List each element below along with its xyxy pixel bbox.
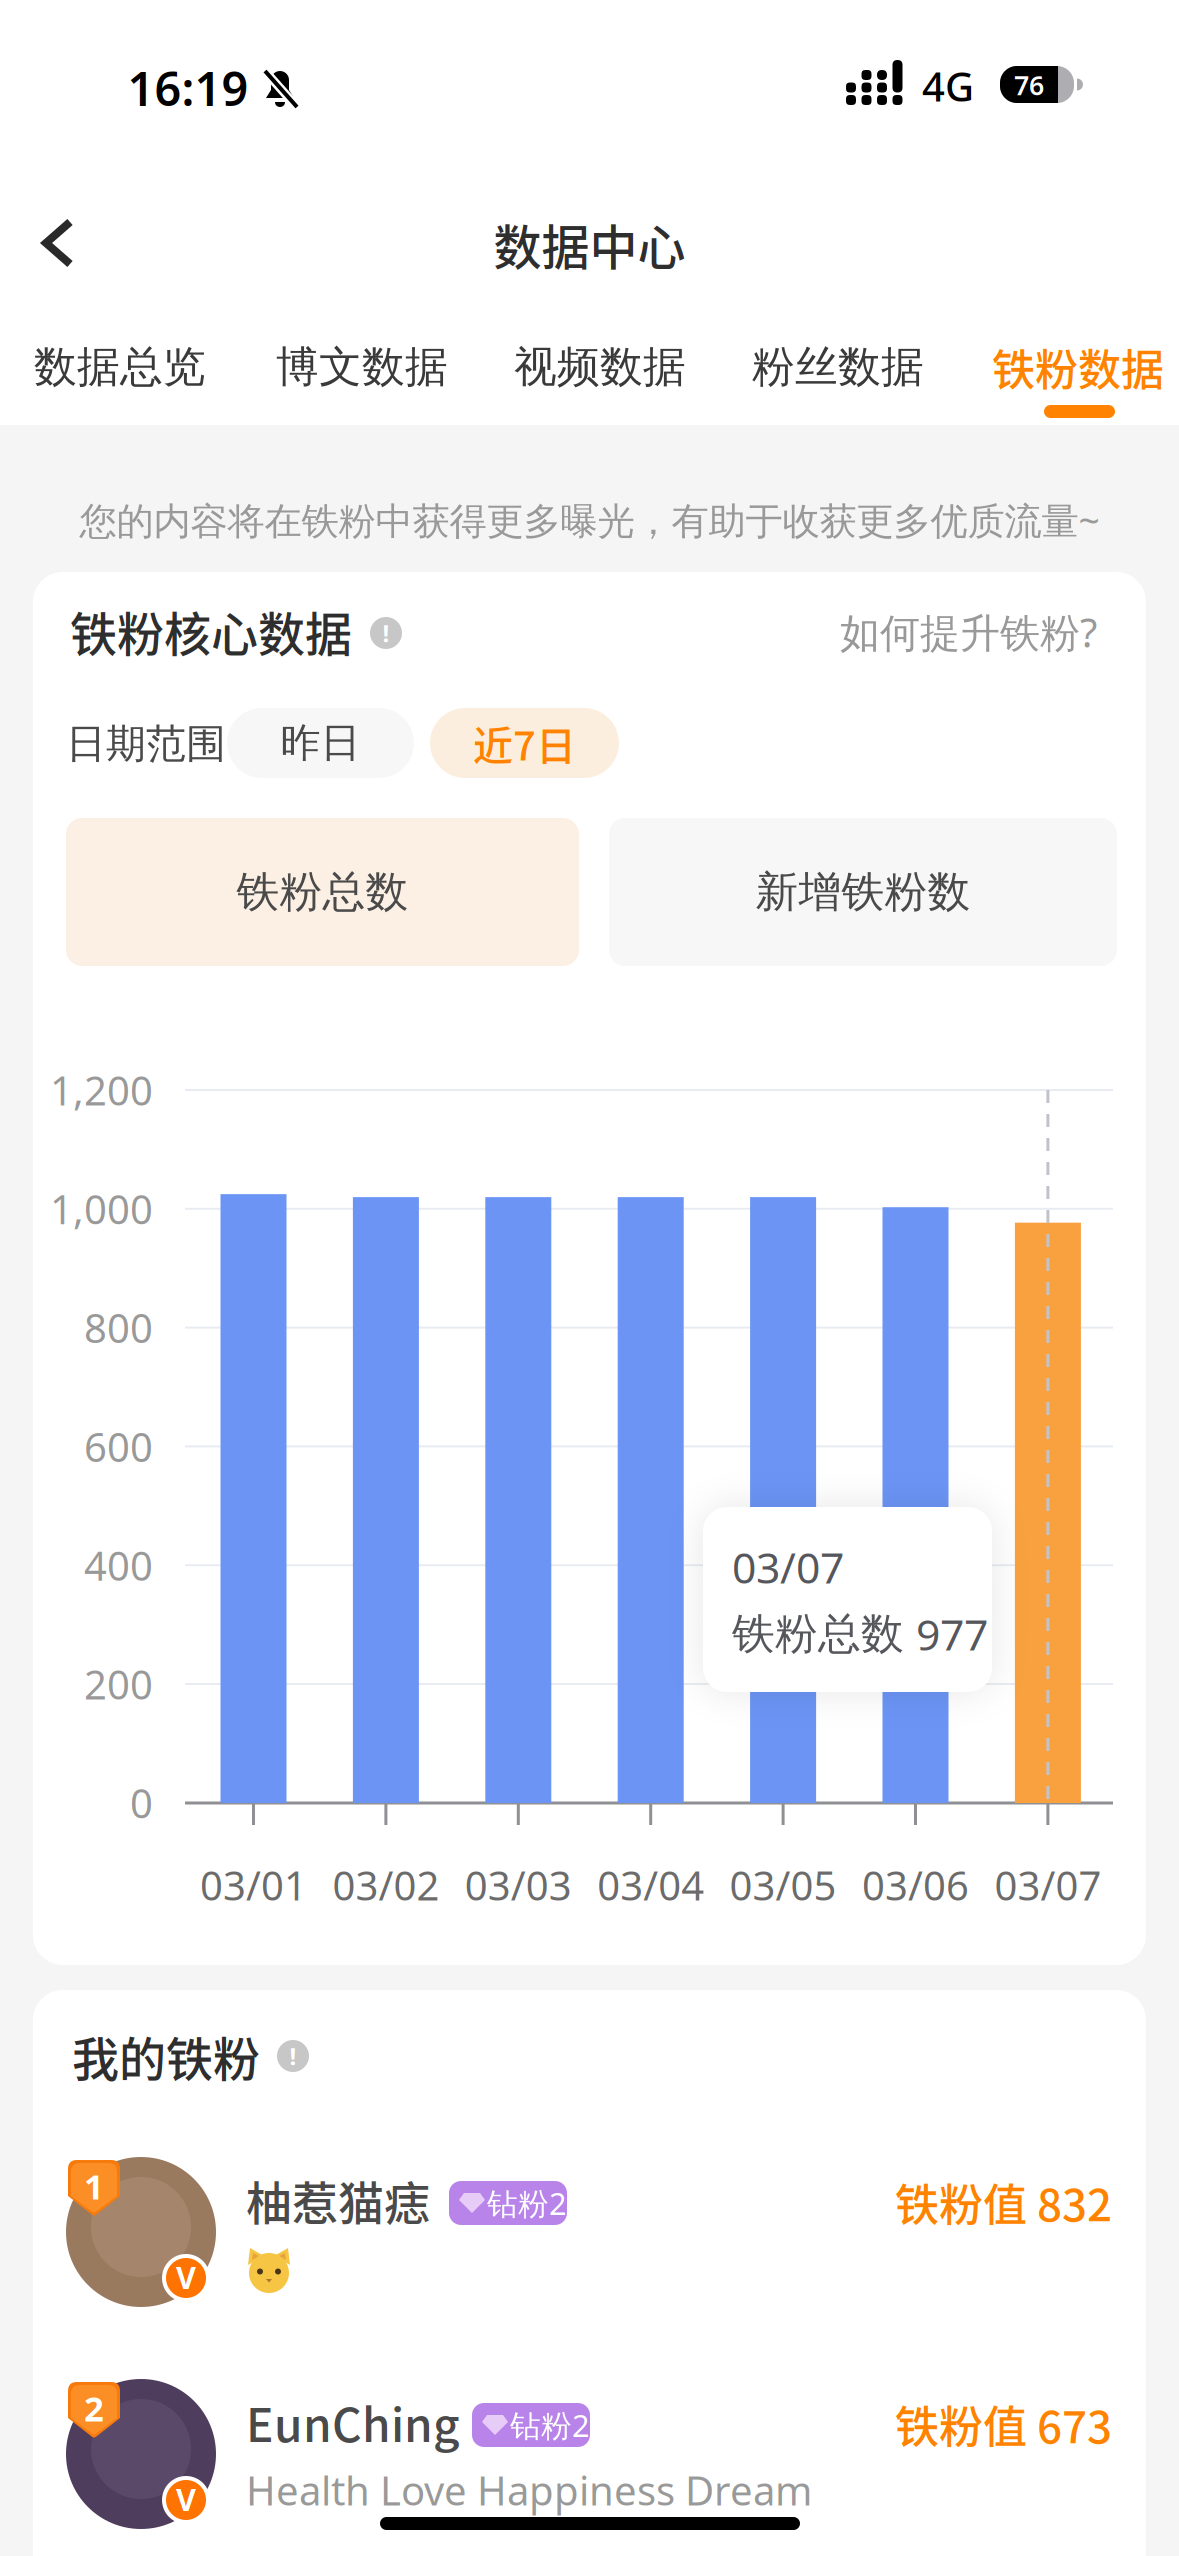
button[interactable]: 1 (33, 2157, 1146, 2312)
staticText: 03/07 (994, 1858, 1101, 1911)
staticText: 数据总览 (34, 341, 206, 393)
staticText: ! (382, 617, 389, 649)
staticText: 我的铁粉 (72, 2022, 260, 2090)
button[interactable]: 近7日 (430, 708, 619, 778)
staticText: 钻粉2 (487, 2183, 567, 2223)
staticText: 76 (1014, 67, 1044, 103)
staticText: 铁粉总数 (236, 866, 408, 918)
staticText: 16:19 (127, 57, 248, 119)
staticText: 03/01 (200, 1858, 307, 1911)
staticText: 1 (84, 2163, 104, 2209)
staticText: 800 (84, 1301, 153, 1354)
staticText: 600 (84, 1420, 153, 1473)
staticText: 铁粉值 832 (895, 2170, 1112, 2234)
staticText: 日期范围 (66, 719, 226, 768)
staticText: 2 (84, 2385, 104, 2431)
staticText: V (176, 2257, 196, 2297)
staticText: 铁粉值 673 (895, 2392, 1112, 2456)
staticText: 铁粉核心数据 (70, 597, 352, 665)
staticText: 昨日 (280, 718, 360, 767)
button[interactable]: 铁粉总数 (66, 818, 579, 966)
button[interactable]: 数据总览 (5, 337, 235, 397)
button[interactable]: 我的铁粉说明 (277, 2040, 309, 2072)
staticText: 03/02 (332, 1858, 439, 1911)
staticText: 近7日 (473, 714, 576, 772)
staticText: 铁粉数据 (992, 336, 1164, 398)
staticText: 977 (916, 1606, 988, 1662)
button[interactable]: 新增铁粉数 (609, 818, 1117, 966)
button[interactable]: 铁粉数据 (963, 337, 1179, 397)
staticText: Health Love Happiness Dream (246, 2463, 812, 2516)
staticText: 如何提升铁粉? (840, 605, 1097, 658)
button[interactable]: 粉丝数据 (723, 337, 953, 397)
staticText: 200 (84, 1657, 153, 1710)
button[interactable]: 返回 (36, 216, 84, 270)
staticText: 新增铁粉数 (755, 866, 970, 918)
staticText: 视频数据 (514, 341, 686, 393)
staticText: 0 (130, 1776, 153, 1829)
staticText: 博文数据 (276, 341, 448, 393)
staticText: 03/06 (862, 1858, 969, 1911)
button[interactable]: 铁粉核心数据说明 (370, 617, 402, 649)
staticText: 您的内容将在铁粉中获得更多曝光，有助于收获更多优质流量~ (79, 495, 1099, 545)
staticText: 钻粉2 (510, 2405, 590, 2445)
staticText: 铁粉总数 (732, 1608, 904, 1660)
button[interactable]: 2 (33, 2379, 1146, 2534)
staticText: 1,200 (50, 1063, 153, 1116)
staticText: 03/05 (730, 1858, 837, 1911)
staticText: 1,000 (50, 1182, 153, 1235)
staticText: ! (289, 2040, 296, 2072)
staticText: V (176, 2479, 196, 2519)
button[interactable]: 博文数据 (247, 337, 477, 397)
staticText: 4G (922, 59, 974, 112)
button[interactable]: 视频数据 (485, 337, 715, 397)
staticText: 粉丝数据 (752, 341, 924, 393)
staticText: 03/03 (465, 1858, 572, 1911)
button[interactable]: 如何提升铁粉? (827, 609, 1097, 655)
staticText: 400 (84, 1539, 153, 1592)
staticText: 03/07 (732, 1539, 844, 1595)
staticText: 柚惹猫痣 (246, 2167, 430, 2233)
button[interactable]: 昨日 (227, 708, 414, 778)
staticText: 数据中心 (493, 209, 685, 279)
staticText: 03/04 (597, 1858, 704, 1911)
staticText: EunChing (246, 2389, 460, 2455)
